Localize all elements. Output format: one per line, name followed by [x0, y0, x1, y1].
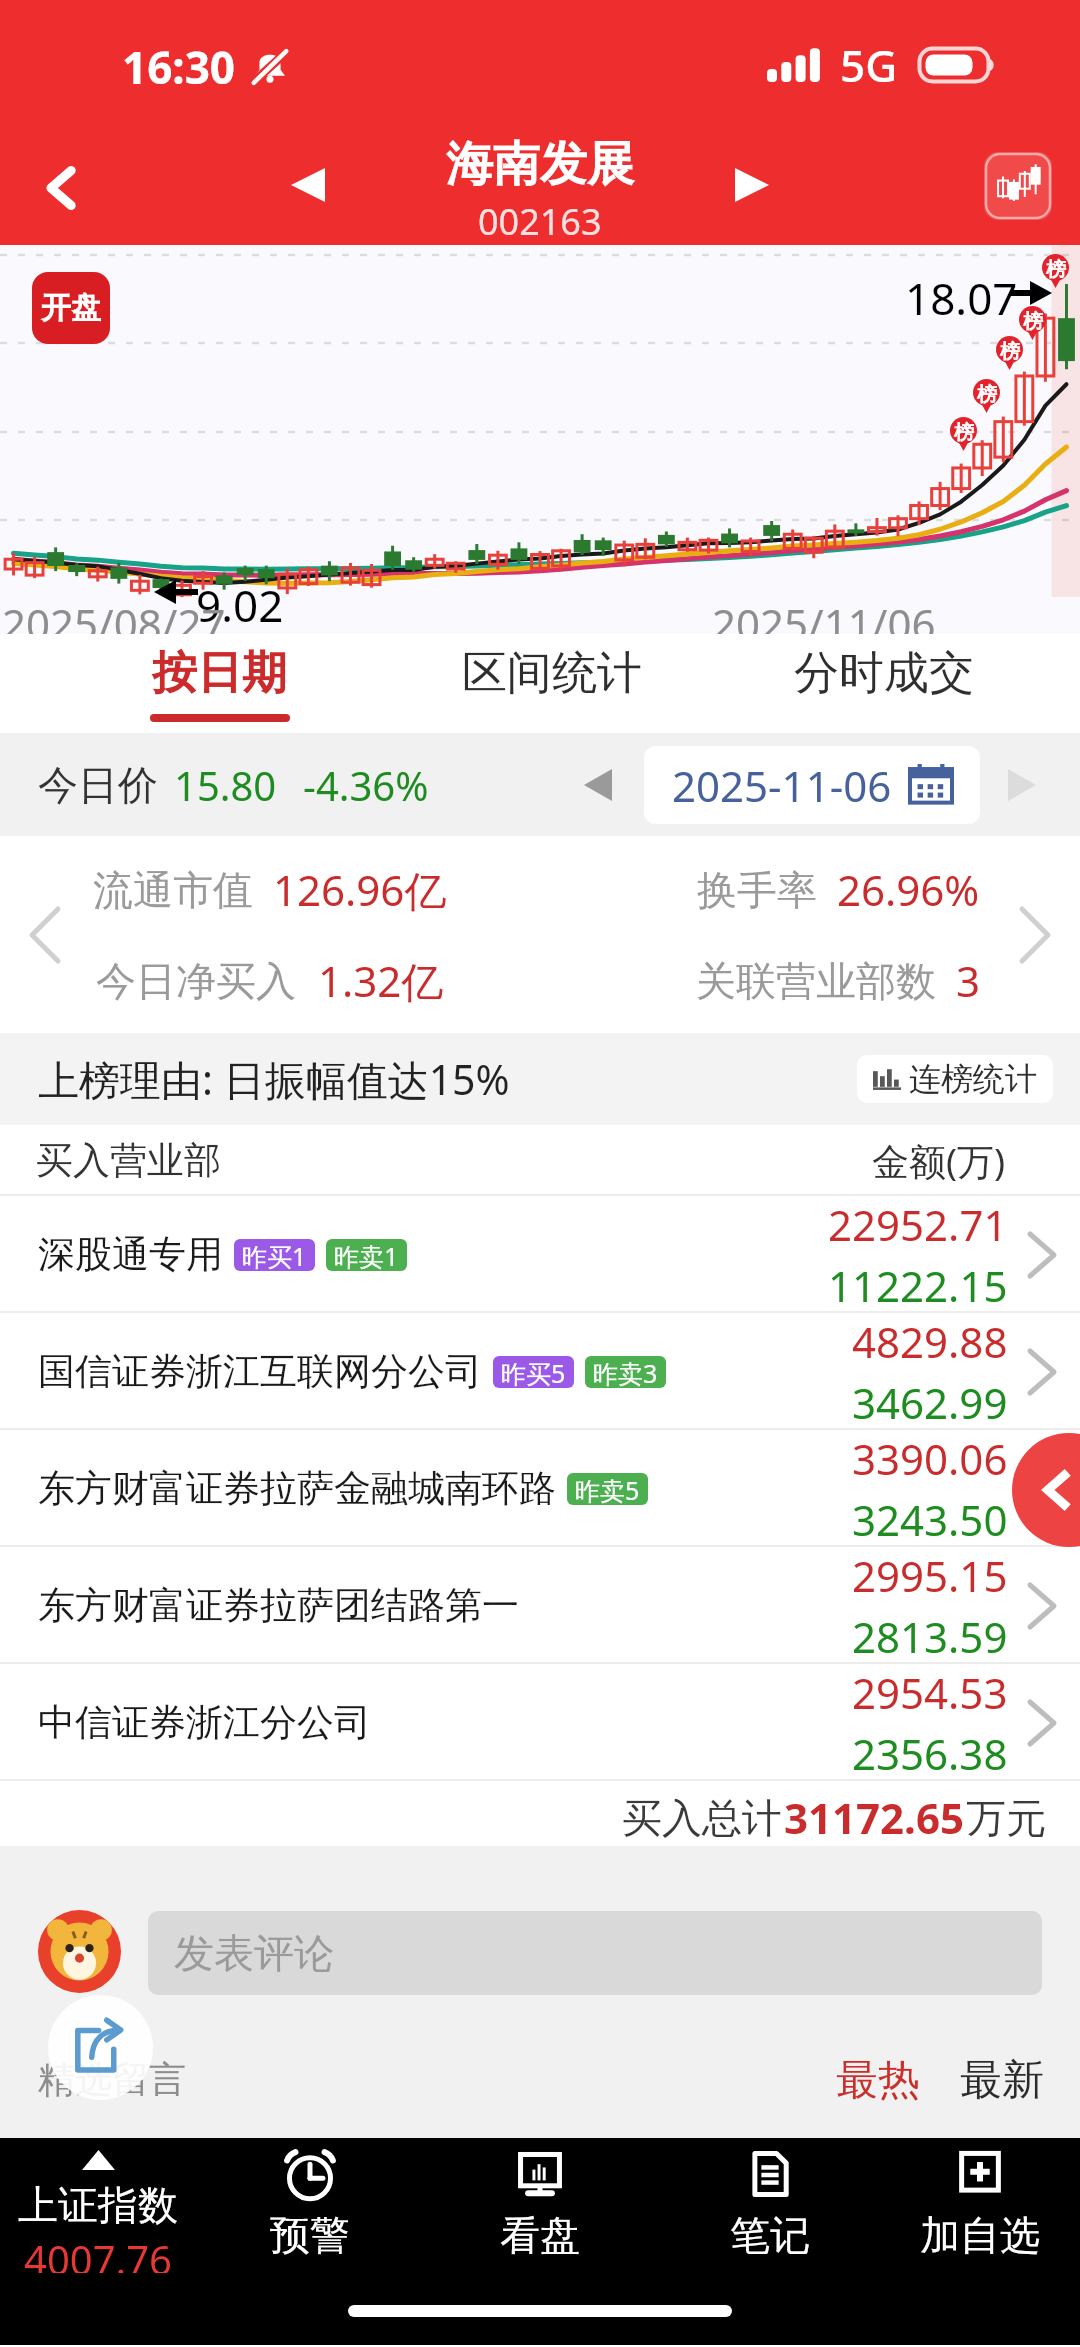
staticText: 笔记: [730, 2210, 810, 2260]
staticText: 2025/11/06: [712, 595, 936, 652]
button[interactable]: 看盘: [446, 2138, 634, 2273]
button[interactable]: 深股通专用: [0, 1196, 1080, 1313]
button[interactable]: 连榜统计: [857, 1055, 1053, 1103]
staticText: 连榜统计: [909, 1059, 1037, 1099]
staticText: 昨卖5: [575, 1473, 640, 1505]
staticText: 买入总计: [622, 1793, 782, 1843]
staticText: 16:30: [122, 37, 236, 97]
staticText: 今日价: [38, 760, 158, 810]
staticText: 22952.71: [828, 1196, 1008, 1253]
staticText: 精选留言: [38, 2056, 186, 2103]
staticText: 深股通专用: [38, 1231, 223, 1278]
staticText: 预警: [270, 2210, 350, 2260]
staticText: 金额(万): [872, 1135, 1006, 1186]
staticText: 换手率: [697, 865, 817, 915]
staticText: 昨买1: [242, 1239, 307, 1271]
staticText: 15.80: [174, 758, 277, 812]
staticText: 2025/08/27: [2, 595, 226, 652]
staticText: 002163: [478, 197, 602, 246]
staticText: 东方财富证券拉萨金融城南环路: [38, 1465, 556, 1512]
staticText: 区间统计: [462, 645, 642, 702]
button[interactable]: Next stock: [716, 149, 788, 221]
staticText: 126.96亿: [273, 861, 447, 918]
staticText: 18.07: [905, 268, 1018, 328]
staticText: 最新: [960, 2054, 1044, 2107]
button[interactable]: 加自选: [886, 2138, 1074, 2273]
staticText: 榜: [1000, 339, 1020, 364]
button[interactable]: 2025-11-06: [644, 746, 980, 824]
staticText: 3390.06: [852, 1430, 1008, 1487]
staticText: 按日期: [152, 645, 287, 702]
staticText: 昨卖3: [593, 1356, 658, 1388]
staticText: 31172.65: [784, 1789, 964, 1846]
button[interactable]: Next day: [992, 755, 1052, 815]
staticText: 3: [956, 952, 981, 1009]
staticText: 榜: [977, 382, 997, 407]
button[interactable]: Profile: [38, 1910, 121, 1993]
staticText: 4007.76: [24, 2232, 172, 2273]
staticText: 流通市值: [93, 865, 253, 915]
staticText: 9.02: [196, 575, 284, 635]
staticText: 榜: [954, 420, 974, 445]
staticText: 开盘: [41, 289, 101, 327]
staticText: 榜: [1023, 309, 1043, 334]
staticText: 关联营业部数: [696, 956, 936, 1006]
staticText: 2025-11-06: [672, 757, 892, 814]
button[interactable]: 发表评论: [148, 1911, 1042, 1995]
button[interactable]: 区间统计: [440, 634, 664, 733]
button[interactable]: 中信证券浙江分公司: [0, 1664, 1080, 1781]
staticText: 看盘: [500, 2210, 580, 2260]
staticText: 26.96%: [837, 861, 980, 918]
staticText: 4829.88: [852, 1313, 1008, 1370]
staticText: 5G: [840, 35, 898, 95]
staticText: 昨买5: [501, 1356, 566, 1388]
staticText: 万元: [966, 1793, 1046, 1843]
staticText: 分时成交: [794, 645, 974, 702]
staticText: 最热: [836, 2054, 920, 2107]
staticText: 国信证券浙江互联网分公司: [38, 1348, 482, 1395]
staticText: 2995.15: [852, 1547, 1008, 1604]
staticText: 2356.38: [852, 1725, 1008, 1781]
button[interactable]: Previous stock: [272, 149, 344, 221]
button[interactable]: Previous day: [568, 755, 628, 815]
staticText: 11222.15: [828, 1257, 1008, 1313]
button[interactable]: 东方财富证券拉萨团结路第一: [0, 1547, 1080, 1664]
staticText: 3462.99: [852, 1374, 1008, 1430]
button[interactable]: 上证指数: [0, 2138, 196, 2273]
staticText: 1.32亿: [318, 952, 444, 1009]
staticText: 发表评论: [174, 1928, 334, 1978]
staticText: -4.36%: [303, 758, 429, 812]
button[interactable]: Share: [48, 1995, 153, 2100]
button[interactable]: 分时成交: [772, 634, 996, 733]
button[interactable]: 预警: [216, 2138, 404, 2273]
staticText: 2954.53: [852, 1664, 1008, 1721]
staticText: 榜: [1046, 257, 1066, 282]
staticText: 上证指数: [18, 2180, 178, 2230]
staticText: 3243.50: [852, 1491, 1008, 1547]
button[interactable]: 国信证券浙江互联网分公司: [0, 1313, 1080, 1430]
staticText: 中信证券浙江分公司: [38, 1699, 371, 1746]
button[interactable]: 最新: [960, 2054, 1044, 2107]
staticText: 海南发展: [446, 135, 634, 194]
staticText: 2813.59: [852, 1608, 1008, 1664]
button[interactable]: 东方财富证券拉萨金融城南环路: [0, 1430, 1080, 1547]
button[interactable]: 按日期: [130, 634, 309, 733]
button[interactable]: K-line chart: [984, 152, 1052, 220]
staticText: 买入营业部: [36, 1137, 221, 1184]
staticText: 加自选: [920, 2210, 1040, 2260]
staticText: 东方财富证券拉萨团结路第一: [38, 1582, 519, 1629]
button[interactable]: 笔记: [676, 2138, 864, 2273]
staticText: 昨卖1: [334, 1239, 399, 1271]
staticText: 上榜理由: 日振幅值达15%: [38, 1051, 510, 1107]
button[interactable]: Previous: [1012, 1433, 1080, 1547]
button[interactable]: 最热: [836, 2054, 920, 2107]
staticText: 今日净买入: [96, 956, 296, 1006]
button[interactable]: Back: [20, 146, 104, 230]
